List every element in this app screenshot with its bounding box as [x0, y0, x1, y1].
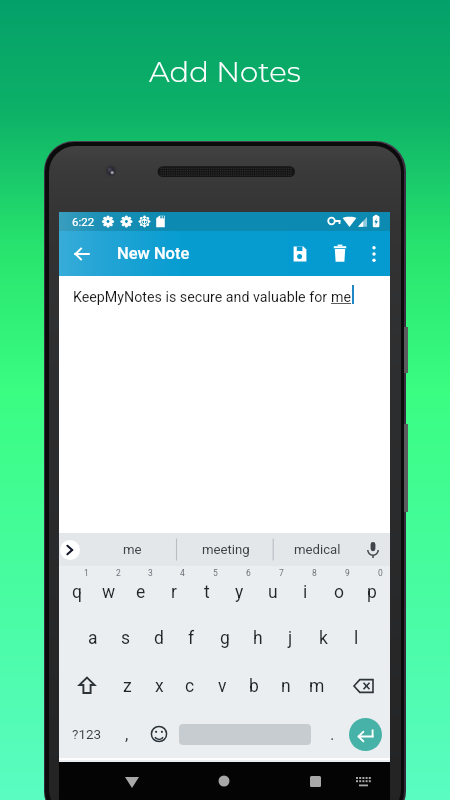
staticText: 3	[148, 568, 153, 578]
staticText: l	[354, 628, 359, 649]
staticText: o	[334, 582, 344, 603]
staticText: 0	[378, 568, 383, 578]
button[interactable]: Delete	[324, 238, 356, 270]
staticText: 6	[246, 568, 251, 578]
staticText: ?123	[72, 726, 102, 742]
button[interactable]: 2	[93, 566, 125, 614]
button[interactable]: j	[274, 614, 307, 662]
button[interactable]: l	[340, 614, 373, 662]
button[interactable]: n	[270, 662, 302, 710]
staticText: a	[88, 628, 98, 649]
button[interactable]: 0	[355, 566, 388, 614]
button[interactable]: ,	[112, 710, 142, 758]
button[interactable]: Save	[284, 238, 316, 270]
staticText: 4	[180, 568, 185, 578]
button[interactable]: h	[241, 614, 274, 662]
staticText: w	[102, 582, 116, 603]
staticText: r	[171, 582, 177, 603]
staticText: s	[121, 628, 131, 649]
button[interactable]: a	[76, 614, 109, 662]
button[interactable]: Space	[177, 710, 313, 758]
staticText: 9	[345, 568, 350, 578]
staticText: n	[281, 676, 291, 697]
staticText: h	[253, 628, 263, 649]
staticText: KeepMyNotes is secure and valuable for	[73, 289, 331, 306]
staticText: g	[220, 628, 230, 649]
staticText: 5	[213, 568, 218, 578]
button[interactable]: 5	[190, 566, 223, 614]
staticText: j	[288, 628, 293, 649]
staticText: c	[185, 676, 195, 697]
staticText: d	[154, 628, 164, 649]
staticText: x	[155, 676, 164, 697]
staticText: z	[123, 676, 132, 697]
staticText: p	[367, 582, 377, 603]
button[interactable]: More options	[358, 238, 390, 270]
staticText: u	[268, 582, 278, 603]
button[interactable]: 7	[256, 566, 289, 614]
staticText: New Note	[117, 244, 190, 263]
button[interactable]: 4	[157, 566, 190, 614]
button[interactable]: Backspace	[341, 662, 386, 710]
button[interactable]: c	[174, 662, 206, 710]
staticText: e	[136, 582, 146, 603]
button[interactable]: ?123	[64, 710, 110, 758]
staticText: y	[235, 582, 244, 603]
button[interactable]: d	[142, 614, 175, 662]
button[interactable]: b	[238, 662, 270, 710]
staticText: me	[331, 289, 352, 306]
staticText: q	[72, 582, 82, 603]
staticText: 7	[279, 568, 284, 578]
staticText: ,	[125, 724, 129, 744]
button[interactable]: Voice input	[362, 539, 384, 561]
button[interactable]: g	[208, 614, 241, 662]
button[interactable]: v	[206, 662, 238, 710]
staticText: f	[188, 628, 195, 649]
staticText: 1	[84, 568, 89, 578]
staticText: i	[303, 582, 308, 603]
staticText: 2	[116, 568, 121, 578]
button[interactable]: 1	[61, 566, 93, 614]
button[interactable]: Enter	[344, 710, 386, 758]
button[interactable]: k	[307, 614, 340, 662]
staticText: meeting	[202, 542, 250, 557]
staticText: medical	[294, 542, 341, 557]
staticText: k	[319, 628, 328, 649]
staticText: 8	[312, 568, 317, 578]
button[interactable]: .	[317, 710, 347, 758]
button[interactable]: medical	[281, 533, 353, 566]
staticText: me	[123, 542, 142, 557]
button[interactable]: me	[112, 533, 153, 566]
button[interactable]: Shift	[64, 662, 109, 710]
button[interactable]: meeting	[190, 533, 262, 566]
button[interactable]: 3	[125, 566, 157, 614]
staticText: 6:22	[72, 215, 95, 228]
button[interactable]: Expand suggestions	[60, 540, 80, 560]
button[interactable]: 8	[289, 566, 322, 614]
staticText: v	[218, 676, 227, 697]
button[interactable]: m	[301, 662, 333, 710]
button[interactable]: 6	[223, 566, 256, 614]
staticText: b	[249, 676, 259, 697]
staticText: m	[309, 676, 325, 697]
button[interactable]: Back	[66, 238, 98, 270]
button[interactable]: Emoji	[144, 710, 174, 758]
staticText: .	[330, 724, 335, 744]
button[interactable]: z	[111, 662, 143, 710]
staticText: t	[204, 582, 210, 603]
button[interactable]: f	[175, 614, 208, 662]
button[interactable]: s	[109, 614, 142, 662]
button[interactable]: x	[143, 662, 175, 710]
staticText: Add Notes	[149, 54, 301, 90]
button[interactable]: 9	[322, 566, 355, 614]
